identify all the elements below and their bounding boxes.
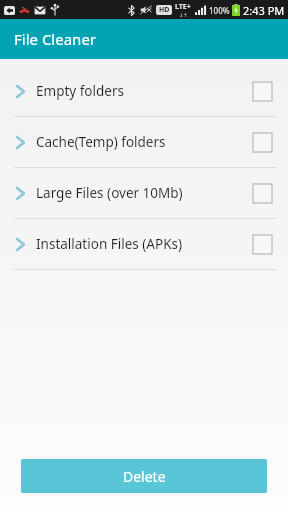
staticText: File Cleaner (14, 29, 97, 49)
staticText: ↓↑ (179, 12, 188, 18)
staticText: Delete (123, 467, 166, 486)
button[interactable]: Installation Files (APKs) (0, 219, 288, 269)
button[interactable]: Select Empty folders (253, 82, 272, 101)
button[interactable]: Delete (21, 459, 267, 493)
staticText: 2:43 PM (243, 3, 285, 18)
button[interactable]: Select Cache(Temp) folders (253, 133, 272, 152)
staticText: Installation Files (APKs) (36, 235, 253, 253)
staticText: Cache(Temp) folders (36, 133, 253, 151)
button[interactable]: Select Installation Files (APKs) (253, 235, 272, 254)
button[interactable]: Large Files (over 10Mb) (0, 168, 288, 218)
button[interactable]: Cache(Temp) folders (0, 117, 288, 167)
staticText: Empty folders (36, 82, 253, 100)
button[interactable]: Select Large Files (over 10Mb) (253, 184, 272, 203)
staticText: HD (159, 5, 170, 15)
staticText: 100% (209, 5, 230, 16)
staticText: LTE+ (175, 2, 191, 12)
staticText: Large Files (over 10Mb) (36, 184, 253, 202)
button[interactable]: Empty folders (0, 66, 288, 116)
